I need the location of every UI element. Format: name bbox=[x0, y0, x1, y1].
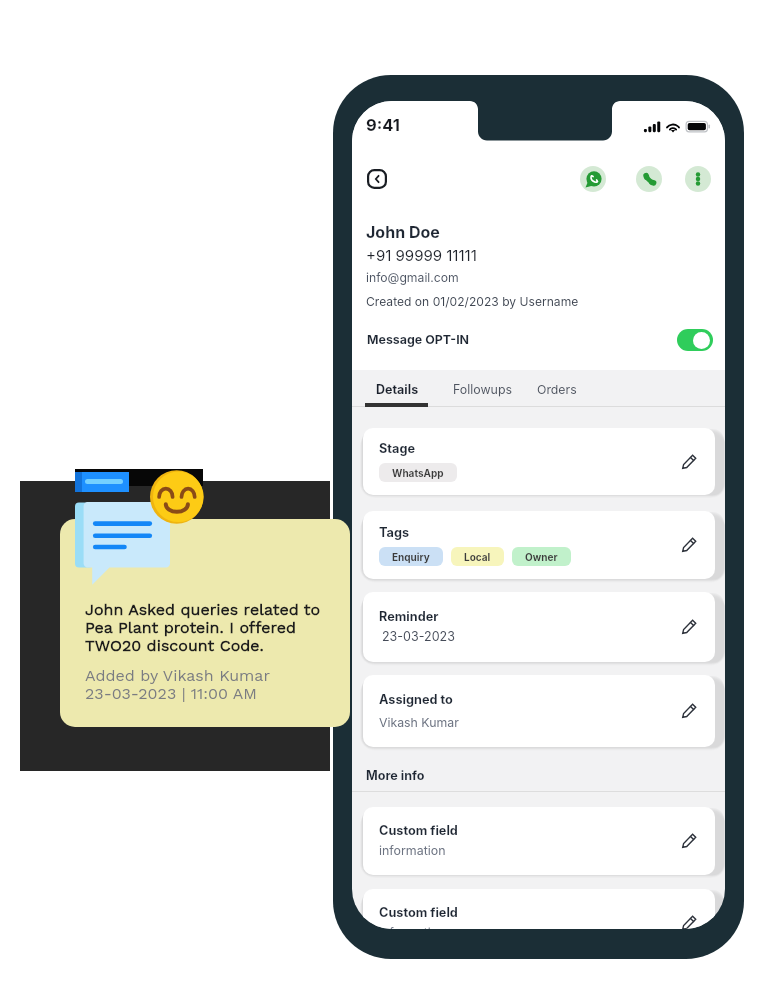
staticText: Enquiry bbox=[392, 551, 430, 563]
staticText: Custom field bbox=[379, 905, 458, 920]
button[interactable]: Edit bbox=[678, 615, 700, 637]
button[interactable]: Assigned to bbox=[363, 675, 715, 747]
button[interactable]: Followups bbox=[453, 382, 513, 397]
button[interactable]: Edit bbox=[678, 450, 700, 472]
staticText: More info bbox=[366, 768, 425, 783]
staticText: 23-03-2023 bbox=[382, 629, 455, 644]
button[interactable]: Stage bbox=[363, 428, 715, 495]
staticText: John Asked queries related to Pea Plant … bbox=[85, 600, 321, 655]
staticText: Tags bbox=[379, 525, 410, 540]
staticText: John Doe bbox=[366, 222, 440, 241]
button[interactable]: More options bbox=[685, 166, 711, 192]
button[interactable]: Reminder bbox=[363, 592, 715, 662]
button[interactable]: Message opt-in bbox=[677, 329, 713, 351]
button[interactable]: Tags bbox=[363, 511, 715, 579]
button[interactable]: Details bbox=[376, 382, 419, 397]
staticText: Created on 01/02/2023 by Username bbox=[366, 294, 579, 309]
button[interactable]: Custom field bbox=[363, 807, 715, 875]
button[interactable]: Call bbox=[636, 166, 662, 192]
staticText: Custom field bbox=[379, 823, 458, 838]
staticText: Local bbox=[464, 551, 491, 563]
button[interactable]: Edit bbox=[678, 911, 700, 929]
staticText: Added by Vikash Kumar 23-03-2023 | 11:00… bbox=[85, 666, 270, 703]
button[interactable]: Edit bbox=[678, 699, 700, 721]
staticText: Vikash Kumar bbox=[379, 715, 459, 730]
staticText: Assigned to bbox=[379, 692, 453, 707]
staticText: info@gmail.com bbox=[366, 270, 459, 285]
staticText: 9:41 bbox=[366, 115, 400, 135]
staticText: +91 99999 11111 bbox=[366, 246, 477, 264]
button[interactable]: WhatsApp bbox=[580, 166, 606, 192]
button[interactable]: Custom field bbox=[363, 889, 715, 929]
staticText: Reminder bbox=[379, 609, 439, 624]
staticText: information bbox=[379, 925, 446, 929]
staticText: information bbox=[379, 843, 446, 858]
button[interactable]: Orders bbox=[537, 382, 577, 397]
button[interactable]: Edit bbox=[678, 829, 700, 851]
button[interactable]: Edit bbox=[678, 533, 700, 555]
staticText: WhatsApp bbox=[392, 467, 444, 479]
staticText: Owner bbox=[525, 551, 558, 563]
staticText: Message OPT-IN bbox=[367, 332, 470, 347]
staticText: Stage bbox=[379, 441, 415, 456]
button[interactable]: Back bbox=[367, 169, 387, 189]
